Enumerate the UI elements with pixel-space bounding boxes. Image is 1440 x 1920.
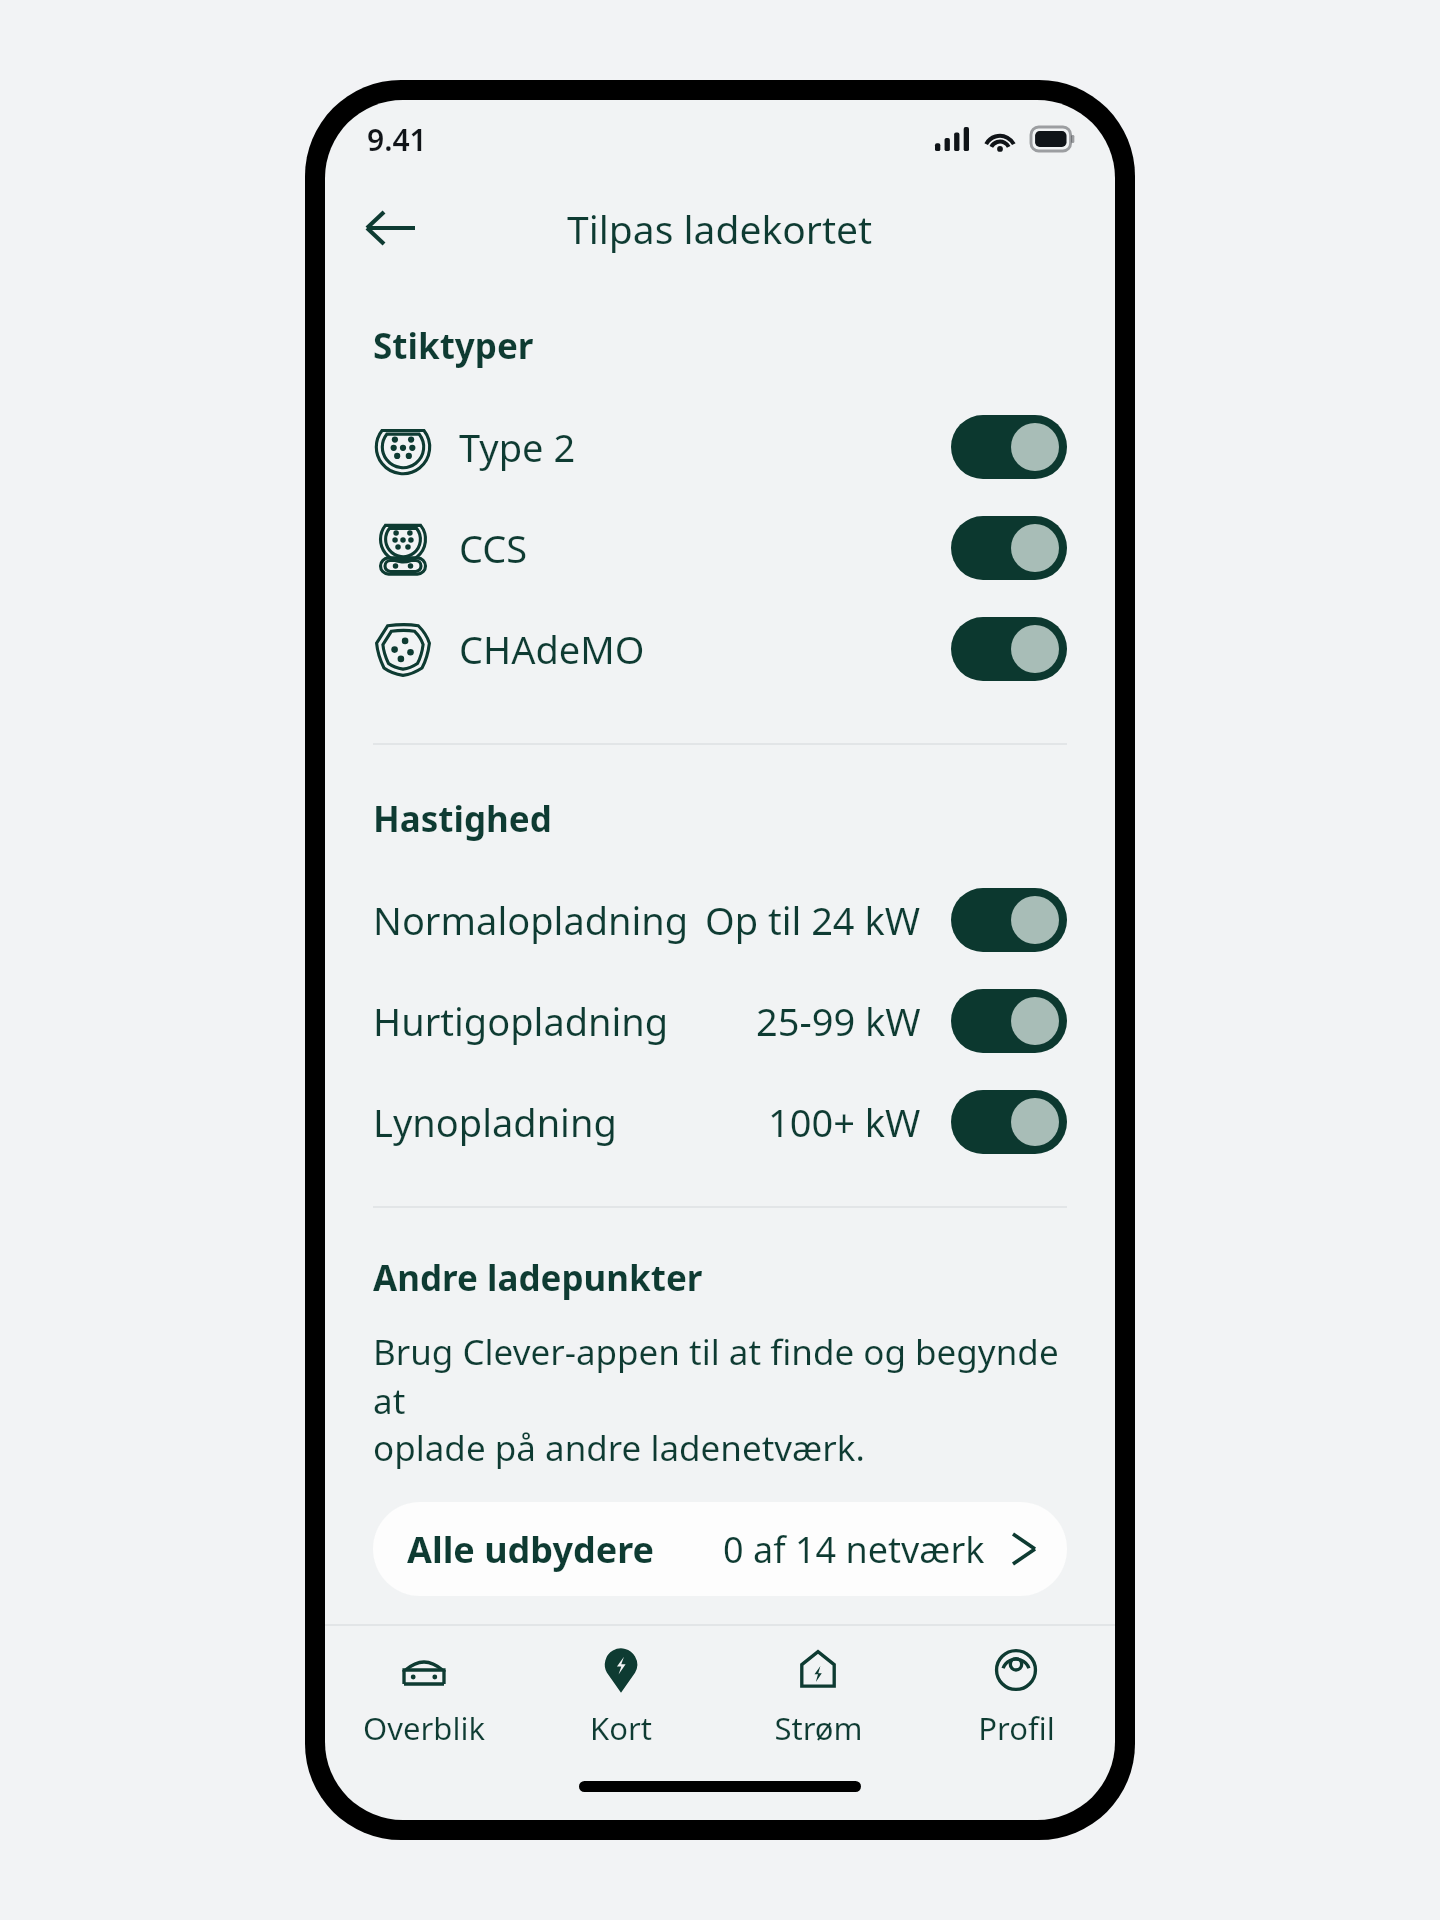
staticText: Alle udbydere <box>407 1525 655 1574</box>
button[interactable]: Back <box>347 185 433 271</box>
button[interactable]: Toggle on <box>951 415 1067 479</box>
button[interactable]: Toggle on <box>951 516 1067 580</box>
staticText: Normalopladning <box>373 894 689 946</box>
button[interactable]: Hurtigopladning <box>325 970 1115 1071</box>
staticText: Overblik <box>363 1707 485 1749</box>
staticText: Lynopladning <box>373 1096 617 1148</box>
button[interactable]: Type 2 <box>325 396 1115 497</box>
button[interactable]: Profil <box>917 1626 1115 1766</box>
staticText: 25-99 kW <box>756 995 921 1047</box>
staticText: Stiktyper <box>373 322 534 370</box>
staticText: Hastighed <box>373 795 552 843</box>
staticText: Kort <box>590 1707 652 1749</box>
button[interactable]: Lynopladning <box>325 1071 1115 1172</box>
staticText: Op til 24 kW <box>705 894 921 946</box>
button[interactable]: Normalopladning <box>325 869 1115 970</box>
staticText: Profil <box>978 1707 1055 1749</box>
button[interactable]: Strøm <box>719 1626 917 1766</box>
staticText: CCS <box>459 522 528 574</box>
button[interactable]: Overblik <box>325 1626 522 1766</box>
staticText: Brug Clever-appen til at finde og begynd… <box>373 1328 1067 1424</box>
staticText: Hurtigopladning <box>373 995 669 1047</box>
staticText: 100+ kW <box>768 1096 921 1148</box>
button[interactable]: Kort <box>522 1626 719 1766</box>
button[interactable]: Toggle on <box>951 989 1067 1053</box>
staticText: 9.41 <box>367 119 427 160</box>
staticText: Andre ladepunkter <box>373 1254 703 1302</box>
staticText: Tilpas ladekortet <box>567 202 873 255</box>
staticText: Type 2 <box>459 421 576 473</box>
button[interactable]: Alle udbydere <box>373 1502 1067 1596</box>
staticText: 0 af 14 netværk <box>723 1525 985 1574</box>
button[interactable]: Toggle on <box>951 617 1067 681</box>
staticText: oplade på andre ladenetværk. <box>373 1424 865 1472</box>
button[interactable]: Toggle on <box>951 1090 1067 1154</box>
staticText: CHAdeMO <box>459 623 645 675</box>
button[interactable]: Toggle on <box>951 888 1067 952</box>
button[interactable]: CCS <box>325 497 1115 598</box>
button[interactable]: CHAdeMO <box>325 598 1115 699</box>
staticText: Strøm <box>774 1707 863 1749</box>
